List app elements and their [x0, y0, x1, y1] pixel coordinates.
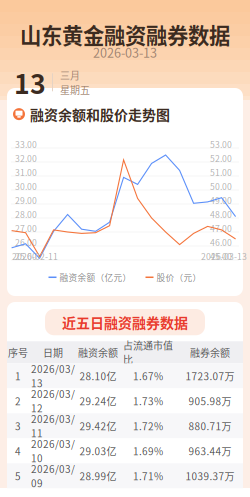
staticText: 1.72%: [133, 418, 163, 433]
staticText: 融资余额和股价走势图: [30, 104, 170, 124]
staticText: 905.98万: [188, 393, 231, 408]
staticText: 1.73%: [133, 393, 163, 408]
staticText: 51.00: [210, 166, 232, 178]
staticText: 2026-02-11: [12, 250, 58, 262]
staticText: 47.00: [210, 222, 232, 234]
staticText: 880.71万: [188, 418, 231, 433]
staticText: 1039.37万: [185, 468, 234, 483]
staticText: 近五日融资融券数据: [62, 312, 188, 332]
staticText: 29.00: [15, 194, 37, 206]
staticText: 28.99亿: [79, 468, 116, 483]
staticText: 2026/03/13: [31, 361, 75, 390]
staticText: 2026/03/10: [31, 436, 75, 465]
staticText: 29.24亿: [79, 393, 116, 408]
staticText: 49.00: [210, 194, 232, 206]
staticText: 32.00: [15, 152, 37, 164]
staticText: 28.10亿: [79, 368, 116, 383]
staticText: 占流通市值比: [123, 338, 173, 367]
staticText: 45.00: [210, 250, 232, 262]
staticText: 13: [14, 63, 46, 102]
staticText: 26.00: [15, 236, 37, 248]
staticText: 3: [15, 418, 21, 433]
staticText: 25.00: [15, 250, 37, 262]
staticText: 52.00: [210, 152, 232, 164]
staticText: 2026/03/12: [31, 386, 75, 415]
staticText: 融券余额: [190, 345, 230, 359]
staticText: 1: [15, 368, 21, 383]
staticText: 48.00: [210, 208, 232, 220]
staticText: 1.71%: [133, 468, 163, 483]
staticText: 序号: [8, 345, 28, 359]
staticText: 日期: [43, 345, 63, 359]
staticText: 1.67%: [133, 368, 163, 383]
staticText: 53.00: [210, 138, 232, 150]
staticText: 2026/03/11: [31, 411, 75, 440]
staticText: 963.44万: [188, 443, 231, 458]
staticText: 2: [15, 393, 21, 408]
staticText: 46.00: [210, 236, 232, 248]
staticText: 山东黄金融资融券数据: [20, 19, 230, 50]
staticText: 2026-03-13: [93, 43, 157, 61]
staticText: 2026/03/09: [31, 461, 75, 490]
staticText: 28.00: [15, 208, 37, 220]
staticText: 融资余额: [78, 345, 118, 359]
staticText: 4: [15, 443, 21, 458]
staticText: 30.00: [15, 180, 37, 192]
staticText: 三月: [60, 68, 80, 82]
staticText: 2026-03-13: [201, 250, 247, 262]
staticText: 33.00: [15, 138, 37, 150]
staticText: 股价（元）: [156, 271, 201, 283]
staticText: 29.42亿: [79, 418, 116, 433]
staticText: 融资余额（亿元）: [59, 271, 131, 283]
staticText: 27.00: [15, 222, 37, 234]
staticText: 31.00: [15, 166, 37, 178]
staticText: 1723.07万: [185, 368, 234, 383]
staticText: 5: [15, 468, 21, 483]
staticText: 50.00: [210, 180, 232, 192]
staticText: 29.03亿: [79, 443, 116, 458]
staticText: 1.69%: [133, 443, 163, 458]
staticText: 星期五: [60, 82, 90, 97]
